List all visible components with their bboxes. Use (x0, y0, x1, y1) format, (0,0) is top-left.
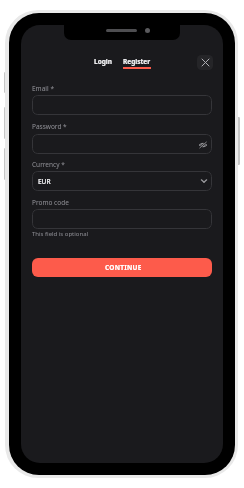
staticText: Login (94, 57, 112, 66)
button[interactable] (32, 209, 212, 229)
button[interactable]: Select currency (201, 178, 207, 184)
staticText: EUR (38, 177, 51, 186)
button[interactable]: EUR (32, 171, 212, 191)
staticText: Promo code (32, 198, 69, 207)
button[interactable] (32, 95, 212, 115)
button[interactable]: Login (88, 53, 118, 70)
button[interactable]: CONTINUE (32, 258, 212, 277)
staticText: Register (123, 57, 151, 66)
button[interactable]: Show password (32, 134, 212, 154)
staticText: Password * (32, 122, 67, 131)
button[interactable]: Register (117, 53, 157, 73)
button[interactable]: Close (197, 55, 213, 70)
staticText: CONTINUE (105, 263, 142, 272)
button[interactable]: Show password (199, 141, 207, 148)
staticText: This field is optional (32, 230, 89, 238)
staticText: Email * (32, 84, 54, 93)
staticText: Currency * (32, 160, 65, 169)
